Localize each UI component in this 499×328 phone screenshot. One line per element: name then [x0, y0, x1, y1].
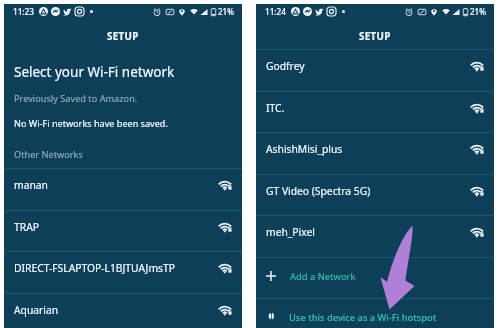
button[interactable]: AshishMisi_plus	[256, 132, 494, 173]
other: Secured network	[471, 60, 484, 73]
staticText: TRAP	[14, 220, 39, 234]
button[interactable]: Godfrey	[256, 49, 494, 90]
staticText: Aquarian	[14, 303, 59, 317]
other: Secured network	[219, 262, 232, 275]
other: Wi-Fi hotspot	[266, 311, 276, 321]
button[interactable]: Wi-Fi hotspot	[256, 298, 494, 328]
staticText: Add a Network	[290, 270, 356, 283]
button[interactable]: GT Video (Spectra 5G)	[256, 174, 494, 215]
staticText: SETUP	[107, 30, 139, 43]
button[interactable]: manan	[4, 168, 242, 209]
other: Secured network	[219, 221, 232, 234]
button[interactable]: TRAP	[4, 210, 242, 251]
staticText: meh_Pixel	[266, 225, 315, 239]
staticText: No Wi-Fi networks have been saved.	[14, 117, 168, 129]
staticText: Select your Wi-Fi network	[14, 63, 175, 81]
staticText: 11:24	[265, 6, 286, 17]
staticText: 21%	[470, 6, 486, 17]
staticText: DIRECT-FSLAPTOP-L1BJTUAJmsTP	[14, 261, 175, 275]
staticText: 21%	[218, 6, 234, 17]
staticText: AshishMisi_plus	[266, 142, 343, 156]
other: Secured network	[471, 226, 484, 239]
staticText: ITC.	[266, 101, 285, 115]
other: Secured network	[471, 185, 484, 198]
staticText: Godfrey	[266, 59, 305, 73]
staticText: Other Networks	[14, 148, 83, 161]
button[interactable]: Aquarian	[4, 293, 242, 328]
other: Add a Network	[266, 271, 276, 281]
other: Secured network	[219, 304, 232, 317]
staticText: GT Video (Spectra 5G)	[266, 184, 371, 198]
other: Secured network	[471, 102, 484, 115]
button[interactable]: DIRECT-FSLAPTOP-L1BJTUAJmsTP	[4, 251, 242, 292]
button[interactable]: Add a Network	[256, 257, 494, 298]
button[interactable]: meh_Pixel	[256, 215, 494, 256]
staticText: SETUP	[359, 30, 391, 43]
staticText: Use this device as a Wi-Fi hotspot	[289, 311, 437, 324]
button[interactable]: ITC.	[256, 91, 494, 132]
staticText: manan	[14, 178, 48, 192]
staticText: 11:23	[13, 6, 34, 17]
other: Secured network	[219, 179, 232, 192]
staticText: Previously Saved to Amazon.	[14, 92, 138, 105]
other: Secured network	[471, 143, 484, 156]
